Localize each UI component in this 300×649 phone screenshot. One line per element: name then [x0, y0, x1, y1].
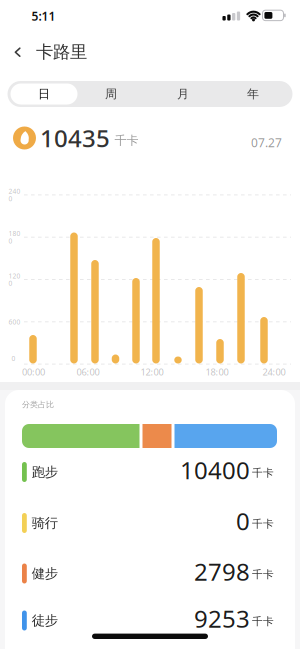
staticText: 0	[8, 279, 12, 288]
staticText: 日	[38, 87, 50, 101]
staticText: 千卡	[252, 615, 274, 628]
staticText: 0	[8, 236, 12, 245]
staticText: 2798	[194, 556, 250, 587]
staticText: 18:00	[205, 366, 228, 378]
staticText: 10400	[180, 454, 250, 486]
button[interactable]: 月	[147, 81, 218, 107]
staticText: 5:11	[31, 8, 55, 24]
button[interactable]: 日	[8, 81, 79, 107]
staticText: 千卡	[252, 466, 274, 479]
staticText: 240	[8, 187, 20, 196]
staticText: 分类占比	[22, 400, 54, 409]
staticText: 健步	[32, 565, 58, 582]
staticText: 120	[8, 271, 20, 280]
staticText: 06:00	[76, 366, 99, 378]
button[interactable]: Back	[2, 37, 32, 67]
staticText: 千卡	[114, 133, 138, 148]
staticText: 千卡	[252, 568, 274, 581]
staticText: 10435	[40, 122, 110, 154]
button[interactable]: 年	[217, 81, 288, 107]
button[interactable]: 徒步	[0, 600, 300, 640]
staticText: 跑步	[32, 464, 58, 480]
staticText: 0	[236, 505, 250, 537]
staticText: 0	[8, 194, 12, 203]
button[interactable]: 健步	[0, 553, 300, 593]
staticText: 千卡	[252, 517, 274, 530]
staticText: 12:00	[140, 366, 163, 378]
staticText: 徒步	[32, 612, 58, 629]
staticText: 0	[11, 354, 15, 363]
staticText: 07.27	[251, 134, 282, 150]
button[interactable]: 跑步	[0, 452, 300, 492]
staticText: 24:00	[262, 366, 285, 378]
staticText: 月	[177, 87, 189, 101]
staticText: 骑行	[32, 515, 58, 531]
button[interactable]: 周	[75, 81, 146, 107]
staticText: 180	[8, 229, 20, 238]
staticText: 周	[105, 87, 117, 101]
button[interactable]: 骑行	[0, 503, 300, 543]
staticText: 600	[8, 317, 20, 326]
staticText: 9253	[194, 603, 250, 634]
staticText: 00:00	[22, 366, 45, 378]
staticText: 年	[247, 87, 259, 101]
staticText: 卡路里	[36, 41, 87, 63]
